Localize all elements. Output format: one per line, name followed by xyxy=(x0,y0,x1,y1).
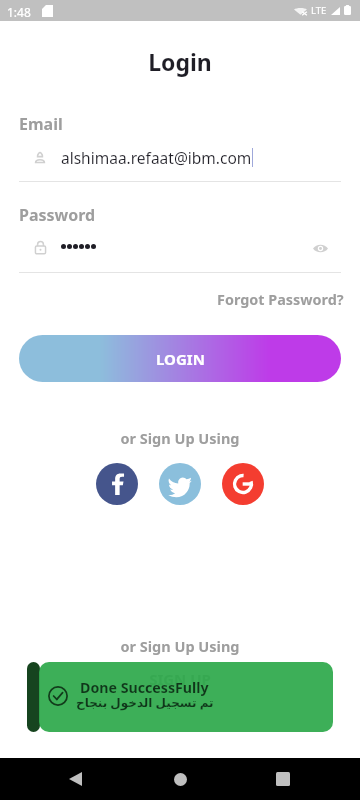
button[interactable]: Show password xyxy=(308,236,332,260)
button[interactable]: Sign in with Facebook xyxy=(96,463,138,505)
staticText: LOGIN xyxy=(156,349,205,369)
button[interactable]: LOGIN xyxy=(19,335,341,382)
staticText: Done SuccessFully xyxy=(80,678,209,697)
staticText: alshimaa.refaat@ibm.com xyxy=(61,147,252,168)
staticText: Password xyxy=(19,204,96,226)
button[interactable]: Sign in with Twitter xyxy=(159,463,201,505)
staticText: or Sign Up Using xyxy=(0,636,360,656)
staticText: Email xyxy=(19,113,63,135)
staticText: LTE xyxy=(311,4,327,17)
staticText: or Sign Up Using xyxy=(0,428,360,448)
button[interactable]: Home xyxy=(158,758,202,800)
button[interactable]: Recent apps xyxy=(261,758,305,800)
button[interactable]: Forgot Password? xyxy=(217,290,344,310)
button[interactable] xyxy=(39,662,333,732)
staticText: 1:48 xyxy=(7,4,31,20)
button[interactable]: Sign in with Google xyxy=(222,463,264,505)
staticText: Login xyxy=(0,46,360,77)
button[interactable]: Back xyxy=(53,758,97,800)
button[interactable]: SIGN UP xyxy=(0,669,360,689)
staticText: تم تسجيل الدخول بنجاح xyxy=(76,694,214,710)
